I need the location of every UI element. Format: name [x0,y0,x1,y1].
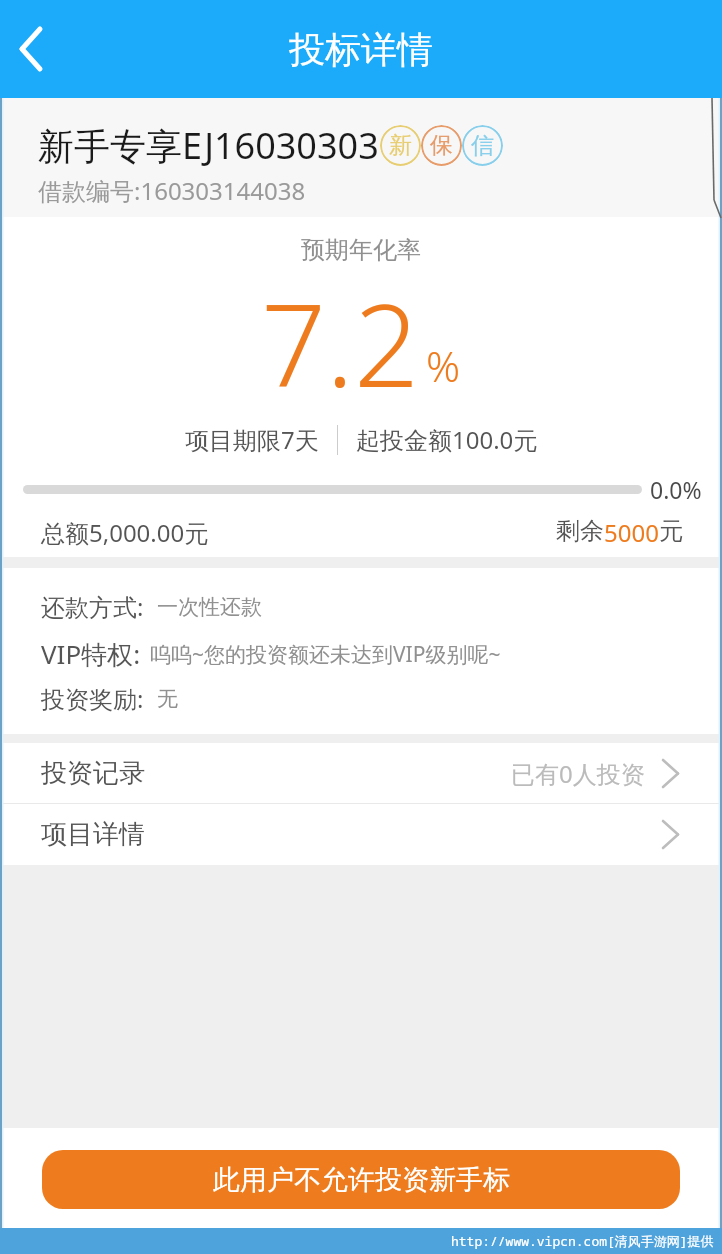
staticText: 新手专享EJ16030303 [38,121,379,170]
staticText: http://www.vipcn.com[清风手游网]提供 [451,1232,714,1250]
staticText: 一次性还款 [157,594,262,620]
staticText: 剩余 [556,516,604,546]
staticText: 保 [430,131,453,160]
staticText: VIP特权: [41,636,141,672]
staticText: 还款方式: [41,590,144,623]
staticText: 无 [157,686,178,712]
button[interactable]: 项目详情 [0,804,722,865]
staticText: 信 [471,131,494,160]
staticText: 7.2 [261,265,420,420]
staticText: 总额5,000.00元 [41,516,209,549]
staticText: 5000 [604,516,659,549]
staticText: 借款编号:160303144038 [38,174,306,207]
staticText: 0.0% [650,474,702,505]
staticText: 项目期限7天 [185,423,319,456]
button[interactable]: Back [0,18,62,80]
staticText: % [426,337,461,394]
button[interactable]: 投资记录 [0,743,722,803]
staticText: 起投金额100.0元 [356,423,538,456]
staticText: 呜呜~您的投资额还未达到VIP级别呢~ [150,640,501,669]
staticText: 此用户不允许投资新手标 [213,1163,510,1197]
button[interactable]: 此用户不允许投资新手标 [42,1150,680,1209]
staticText: 新 [389,131,412,160]
staticText: 预期年化率 [0,235,722,265]
staticText: 投资记录 [41,757,145,790]
staticText: 已有0人投资 [511,757,645,790]
staticText: 元 [659,516,683,546]
staticText: 项目详情 [41,818,145,851]
staticText: 投标详情 [289,27,433,72]
staticText: 投资奖励: [41,682,144,715]
